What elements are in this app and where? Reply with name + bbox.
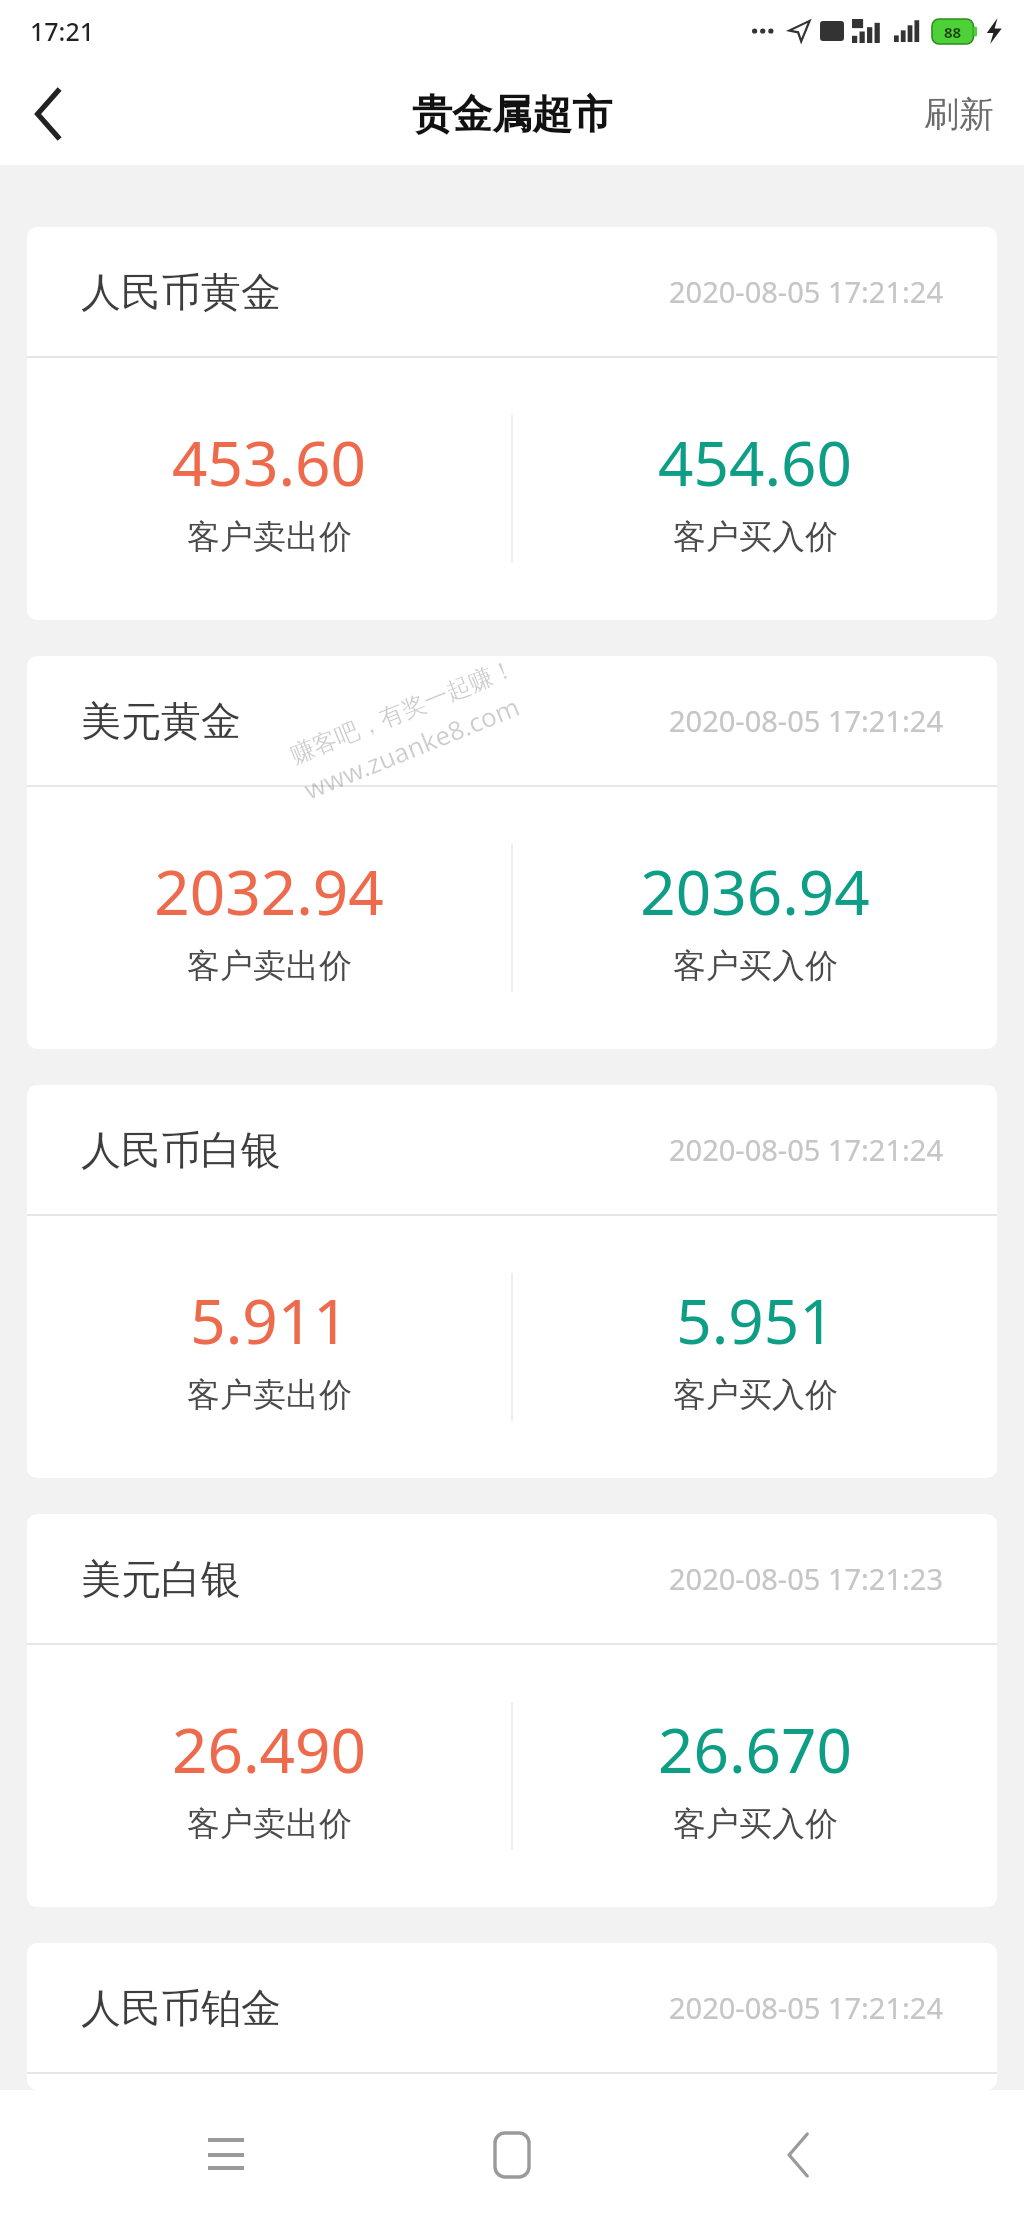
staticText: 2020-08-05 17:21:23 — [669, 1559, 943, 1598]
staticText: 客户买入价 — [673, 945, 838, 987]
staticText: 客户卖出价 — [187, 1803, 352, 1845]
staticText: 人民币黄金 — [81, 267, 281, 317]
staticText: 美元黄金 — [81, 696, 241, 746]
staticText: 88 — [944, 22, 962, 42]
staticText: 2020-08-05 17:21:24 — [669, 1988, 943, 2027]
button[interactable]: 刷新 — [894, 76, 1024, 152]
staticText: 17:21 — [30, 14, 95, 48]
button[interactable]: 人民币白银 — [27, 1085, 997, 1478]
button[interactable]: Back — [738, 2095, 858, 2215]
staticText: 5.951 — [676, 1278, 835, 1362]
staticText: 2032.94 — [154, 849, 384, 933]
button[interactable]: Home — [452, 2095, 572, 2215]
button[interactable]: 人民币铂金 — [27, 1943, 997, 2090]
staticText: 客户卖出价 — [187, 1374, 352, 1416]
staticText: 刷新 — [924, 92, 994, 136]
staticText: 人民币铂金 — [81, 1983, 281, 2033]
staticText: 客户买入价 — [673, 1803, 838, 1845]
staticText: 贵金属超市 — [412, 89, 612, 139]
staticText: 26.490 — [172, 1707, 366, 1791]
staticText: 453.60 — [172, 420, 366, 504]
staticText: 2020-08-05 17:21:24 — [669, 701, 943, 740]
staticText: 赚客吧，有奖一起赚！ — [286, 653, 520, 770]
button[interactable]: 人民币黄金 — [27, 227, 997, 620]
button[interactable]: Recent apps — [166, 2095, 286, 2215]
staticText: 454.60 — [658, 420, 852, 504]
staticText: 客户买入价 — [673, 1374, 838, 1416]
staticText: 客户卖出价 — [187, 516, 352, 558]
staticText: 26.670 — [658, 1707, 852, 1791]
staticText: 客户卖出价 — [187, 945, 352, 987]
staticText: 客户买入价 — [673, 516, 838, 558]
staticText: 2020-08-05 17:21:24 — [669, 1130, 943, 1169]
staticText: 2020-08-05 17:21:24 — [669, 272, 943, 311]
staticText: 人民币白银 — [81, 1125, 281, 1175]
button[interactable]: 美元黄金 — [27, 656, 997, 1049]
staticText: www.zuanke8.com — [299, 688, 525, 806]
staticText: 2036.94 — [640, 849, 870, 933]
staticText: 5.911 — [190, 1278, 349, 1362]
button[interactable]: Back — [0, 66, 96, 162]
staticText: 美元白银 — [81, 1554, 241, 1604]
button[interactable]: 美元白银 — [27, 1514, 997, 1907]
